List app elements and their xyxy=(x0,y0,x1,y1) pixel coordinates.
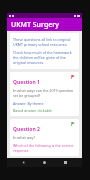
staticText: Which of the following is the correct re… xyxy=(13,143,76,153)
button[interactable]: Back xyxy=(19,158,28,167)
staticText: In what ways can the 2019 question set b… xyxy=(13,88,76,98)
button[interactable]: Question 1 xyxy=(10,72,79,116)
staticText: UKMT Surgery xyxy=(11,20,59,30)
staticText: These questions all link to original UKM… xyxy=(13,37,76,47)
staticText: Based answer clickable xyxy=(13,108,52,113)
button[interactable]: Flag question xyxy=(71,75,75,79)
button[interactable]: Recents xyxy=(61,158,70,167)
staticText: Question 1 xyxy=(13,79,40,86)
button[interactable]: Question 2 xyxy=(10,119,79,156)
button[interactable]: Home xyxy=(40,158,49,167)
staticText: Answer: By theme xyxy=(13,101,44,106)
button[interactable]: These questions all link to original UKM… xyxy=(10,33,79,69)
staticText: In what way? xyxy=(13,135,35,140)
button[interactable]: Mark complete xyxy=(71,122,75,126)
button[interactable]: UKMT Surgery xyxy=(7,18,82,31)
staticText: Question 2 xyxy=(13,126,40,133)
staticText: Check how much of the homework the child… xyxy=(13,50,76,65)
